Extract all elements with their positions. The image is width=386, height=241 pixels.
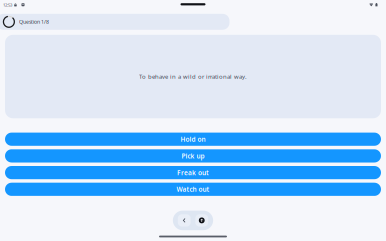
staticText: Question 1/8: [19, 18, 49, 25]
staticText: Freak out: [177, 168, 209, 177]
staticText: Pick up: [181, 151, 204, 160]
staticText: 12:53: [3, 2, 12, 8]
button[interactable]: Pick up: [5, 149, 381, 162]
button[interactable]: Watch out: [5, 183, 381, 196]
staticText: Watch out: [176, 185, 209, 194]
button[interactable]: Hold on: [5, 133, 381, 146]
staticText: Hold on: [180, 135, 205, 144]
button[interactable]: Back: [178, 214, 191, 226]
button[interactable]: Open page: [195, 214, 208, 226]
staticText: To behave in a wild or irrational way.: [139, 73, 247, 81]
button[interactable]: Freak out: [5, 166, 381, 179]
